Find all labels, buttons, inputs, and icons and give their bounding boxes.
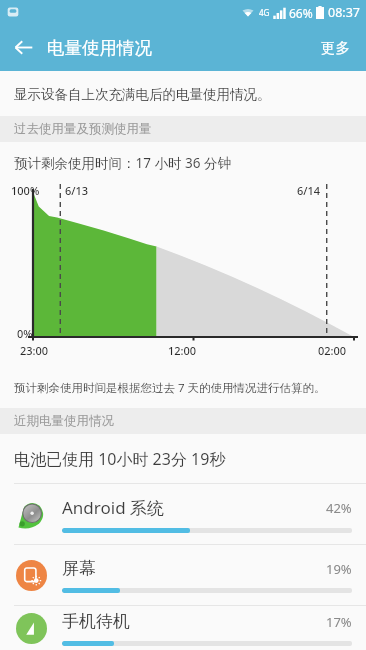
staticText: 显示设备自上次充满电后的电量使用情况。 (14, 86, 271, 103)
staticText: 更多 (321, 39, 350, 57)
staticText: 08:37 (328, 4, 360, 21)
staticText: 100% (11, 183, 40, 198)
button[interactable]: 屏幕 (0, 545, 366, 605)
staticText: 电池已使用 10小时 23分 19秒 (14, 448, 226, 470)
staticText: 02:00 (318, 343, 347, 358)
button[interactable]: Android 系统 (0, 484, 366, 544)
staticText: 4G (259, 7, 270, 18)
staticText: 过去使用量及预测使用量 (14, 121, 152, 137)
staticText: 6/13 (65, 183, 89, 198)
staticText: 近期电量使用情况 (14, 413, 114, 429)
staticText: 预计剩余使用时间：17 小时 36 分钟 (14, 154, 231, 172)
staticText: 19% (326, 560, 352, 578)
staticText: 0% (17, 326, 33, 341)
staticText: 电量使用情况 (47, 37, 152, 59)
button[interactable]: 更多 (305, 27, 366, 69)
staticText: 23:00 (20, 343, 49, 358)
staticText: 12:00 (168, 343, 197, 358)
staticText: 屏幕 (62, 558, 326, 579)
staticText: 预计剩余使用时间是根据您过去 7 天的使用情况进行估算的。 (14, 380, 326, 396)
staticText: 42% (326, 499, 352, 517)
staticText: 手机待机 (62, 611, 326, 632)
button[interactable]: Back (0, 24, 47, 71)
staticText: 6/14 (297, 183, 321, 198)
staticText: 66% (289, 5, 313, 21)
button[interactable]: 手机待机 (0, 606, 366, 650)
staticText: Android 系统 (62, 496, 326, 519)
staticText: 17% (326, 613, 352, 631)
